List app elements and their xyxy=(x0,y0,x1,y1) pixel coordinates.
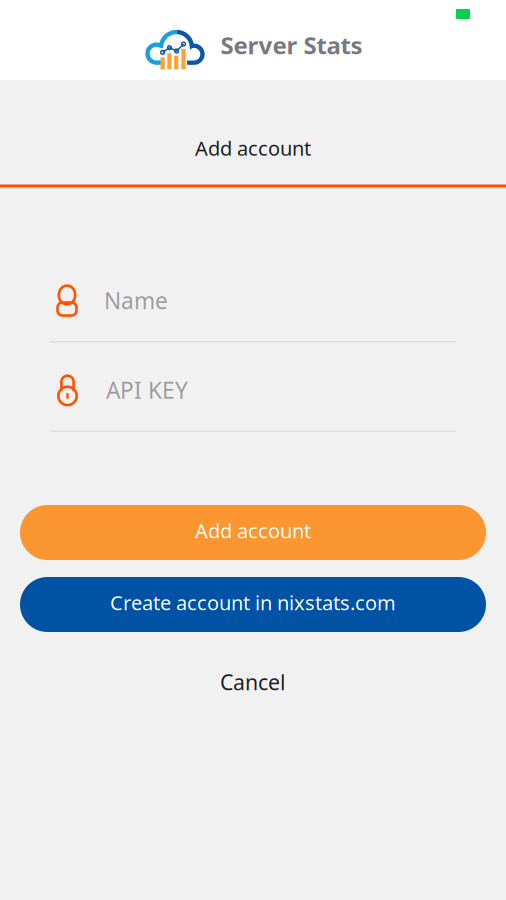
staticText: Cancel xyxy=(220,668,286,696)
staticText: Create account in nixstats.com xyxy=(110,589,396,616)
button[interactable]: Add account xyxy=(0,505,506,560)
staticText: Add account xyxy=(195,517,311,544)
staticText: Server Stats xyxy=(220,29,362,61)
button[interactable]: Create account in nixstats.com xyxy=(0,577,506,632)
staticText: Name xyxy=(104,285,168,315)
button[interactable]: Add account xyxy=(0,80,506,188)
staticText: API KEY xyxy=(106,375,188,405)
staticText: Add account xyxy=(195,135,311,161)
button[interactable]: Cancel xyxy=(220,662,286,702)
